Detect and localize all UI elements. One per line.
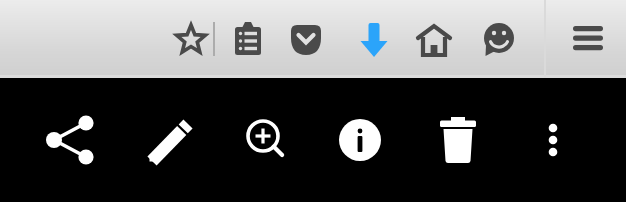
button[interactable]: Downloads: [351, 0, 397, 78]
button[interactable]: Info: [316, 78, 404, 202]
button[interactable]: Delete: [414, 78, 502, 202]
button[interactable]: Reading list: [225, 0, 271, 78]
button[interactable]: More options: [516, 78, 590, 202]
button[interactable]: Zoom in: [222, 78, 310, 202]
button[interactable]: Feedback: [476, 0, 522, 78]
button[interactable]: Share: [28, 78, 116, 202]
button[interactable]: Edit: [128, 78, 216, 202]
button[interactable]: Save to Pocket: [283, 0, 329, 78]
button[interactable]: Menu: [558, 0, 618, 78]
button[interactable]: Bookmark: [168, 0, 214, 78]
button[interactable]: Home: [411, 0, 457, 78]
